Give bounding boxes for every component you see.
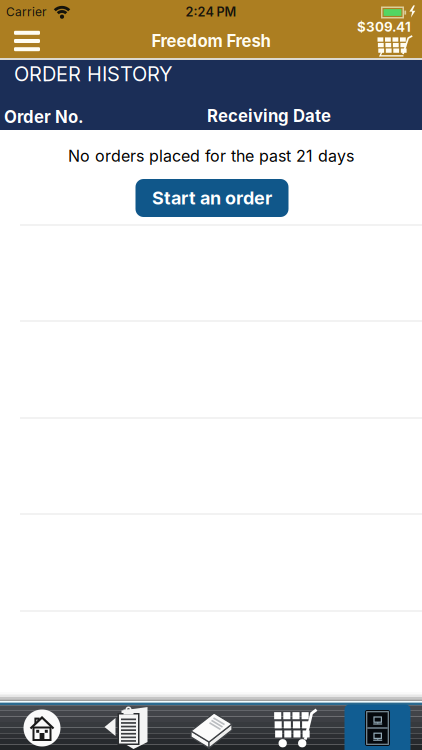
staticText: No orders placed for the past 21 days [68, 146, 354, 166]
button[interactable]: Home [0, 705, 84, 750]
staticText: 2:24 PM [185, 4, 236, 20]
staticText: Carrier [6, 5, 47, 19]
button[interactable]: Cart [321, 18, 411, 60]
staticText: Receiving Date [207, 106, 331, 126]
staticText: Freedom Fresh [151, 31, 270, 51]
staticText: $309.41 [357, 19, 411, 35]
button[interactable]: Start an order [135, 179, 288, 217]
staticText: Order No. [4, 107, 84, 127]
staticText: ORDER HISTORY [14, 62, 173, 86]
button[interactable]: Devices [344, 705, 411, 750]
button[interactable]: Catalog [169, 705, 253, 750]
button[interactable]: Cart [253, 705, 337, 750]
button[interactable]: Menu [7, 23, 47, 59]
button[interactable]: Order History [84, 705, 168, 750]
staticText: Start an order [152, 187, 272, 209]
